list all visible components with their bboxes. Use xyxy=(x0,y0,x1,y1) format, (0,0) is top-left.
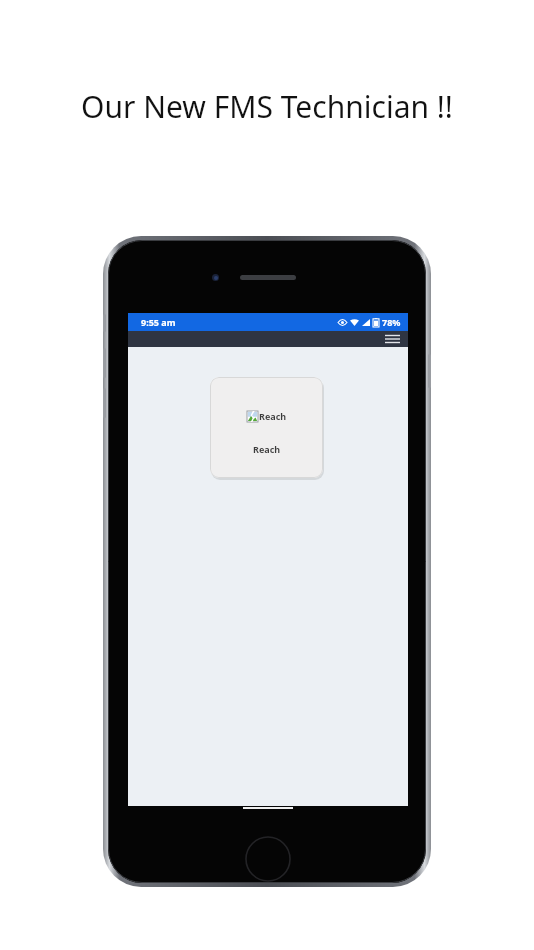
staticText: 78% xyxy=(382,316,401,328)
button[interactable]: Reach xyxy=(210,377,323,478)
staticText: 9:55 am xyxy=(141,316,176,328)
staticText: Reach xyxy=(253,443,281,455)
staticText: Reach xyxy=(259,410,287,422)
button[interactable]: Menu xyxy=(382,331,402,347)
staticText: Our New FMS Technician !! xyxy=(0,86,534,127)
